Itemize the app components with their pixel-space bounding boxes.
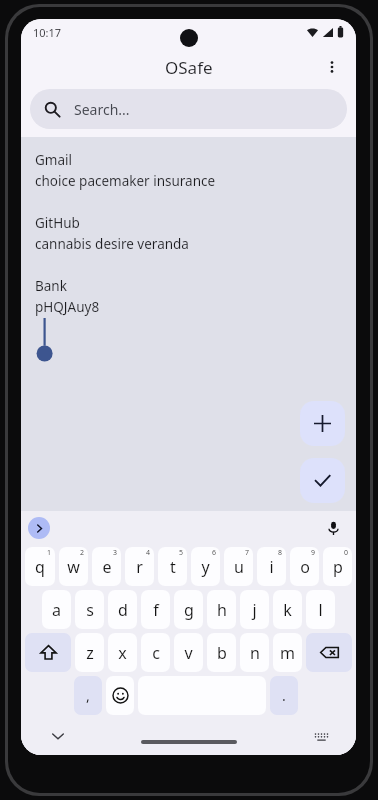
button[interactable]: Shift (25, 633, 71, 672)
button[interactable]: c (141, 633, 170, 672)
button[interactable]: j (240, 590, 269, 629)
staticText: 4 (146, 548, 151, 558)
button[interactable]: Hide keyboard (43, 721, 73, 751)
button[interactable]: w (59, 547, 88, 586)
button[interactable]: y (191, 547, 220, 586)
button[interactable]: Expand suggestions (28, 517, 50, 539)
staticText: l (318, 599, 323, 621)
button[interactable]: More options (314, 49, 350, 85)
button[interactable]: Voice input (320, 515, 346, 541)
button[interactable]: b (207, 633, 236, 672)
button[interactable]: i (257, 547, 286, 586)
staticText: , (86, 686, 90, 705)
staticText: b (217, 642, 227, 664)
staticText: s (86, 599, 94, 621)
button[interactable]: p (323, 547, 352, 586)
staticText: cannabis desire veranda (35, 235, 189, 253)
staticText: 2 (80, 548, 85, 558)
button[interactable]: n (240, 633, 269, 672)
button[interactable]: Gmail (35, 149, 342, 192)
staticText: c (152, 642, 160, 664)
staticText: 8 (278, 548, 283, 558)
staticText: o (300, 556, 310, 578)
button[interactable]: d (108, 590, 137, 629)
button[interactable]: Backspace (306, 633, 352, 672)
staticText: 5 (179, 548, 184, 558)
button[interactable]: Search... (30, 89, 347, 129)
staticText: e (102, 556, 112, 578)
button[interactable]: Switch keyboard (306, 721, 336, 751)
button[interactable]: m (273, 633, 302, 672)
staticText: h (217, 599, 227, 621)
staticText: n (250, 642, 260, 664)
staticText: m (280, 642, 295, 664)
button[interactable]: Add entry (300, 401, 345, 446)
staticText: OSafe (165, 56, 213, 79)
staticText: 0 (344, 548, 349, 558)
staticText: r (136, 556, 143, 578)
button[interactable]: t (158, 547, 187, 586)
button[interactable]: h (207, 590, 236, 629)
staticText: 6 (212, 548, 217, 558)
button[interactable]: v (174, 633, 203, 672)
staticText: t (170, 556, 176, 578)
staticText: 7 (245, 548, 250, 558)
staticText: . (282, 686, 286, 705)
staticText: g (184, 599, 194, 621)
button[interactable]: , (74, 676, 102, 715)
button[interactable]: g (174, 590, 203, 629)
staticText: Gmail (35, 151, 72, 169)
button[interactable]: . (270, 676, 298, 715)
staticText: choice pacemaker insurance (35, 172, 216, 190)
staticText: w (67, 556, 80, 578)
staticText: u (234, 556, 244, 578)
button[interactable]: Confirm (300, 458, 345, 503)
button[interactable]: l (306, 590, 335, 629)
button[interactable]: GitHub (35, 212, 342, 255)
staticText: 3 (113, 548, 118, 558)
staticText: 10:17 (33, 25, 62, 40)
staticText: v (184, 642, 193, 664)
button[interactable]: x (108, 633, 137, 672)
staticText: d (118, 599, 128, 621)
staticText: Bank (35, 277, 67, 295)
staticText: f (153, 599, 159, 621)
staticText: z (86, 642, 94, 664)
staticText: p (333, 556, 343, 578)
button[interactable]: o (290, 547, 319, 586)
staticText: q (35, 556, 45, 578)
staticText: x (118, 642, 127, 664)
button[interactable]: Bank (35, 275, 342, 318)
staticText: 1 (47, 548, 52, 558)
staticText: j (252, 599, 257, 621)
button[interactable]: f (141, 590, 170, 629)
button[interactable]: s (75, 590, 104, 629)
button[interactable]: a (42, 590, 71, 629)
staticText: i (269, 556, 274, 578)
button[interactable]: Emoji (106, 676, 134, 715)
staticText: GitHub (35, 214, 80, 232)
button[interactable]: k (273, 590, 302, 629)
staticText: y (201, 556, 210, 578)
button[interactable]: q (25, 547, 55, 586)
staticText: 9 (311, 548, 316, 558)
button[interactable]: r (125, 547, 154, 586)
button[interactable]: z (75, 633, 104, 672)
staticText: Search... (74, 100, 130, 119)
staticText: k (283, 599, 292, 621)
staticText: a (52, 599, 61, 621)
staticText: pHQJAuy8 (35, 298, 100, 316)
button[interactable]: e (92, 547, 121, 586)
button[interactable]: u (224, 547, 253, 586)
